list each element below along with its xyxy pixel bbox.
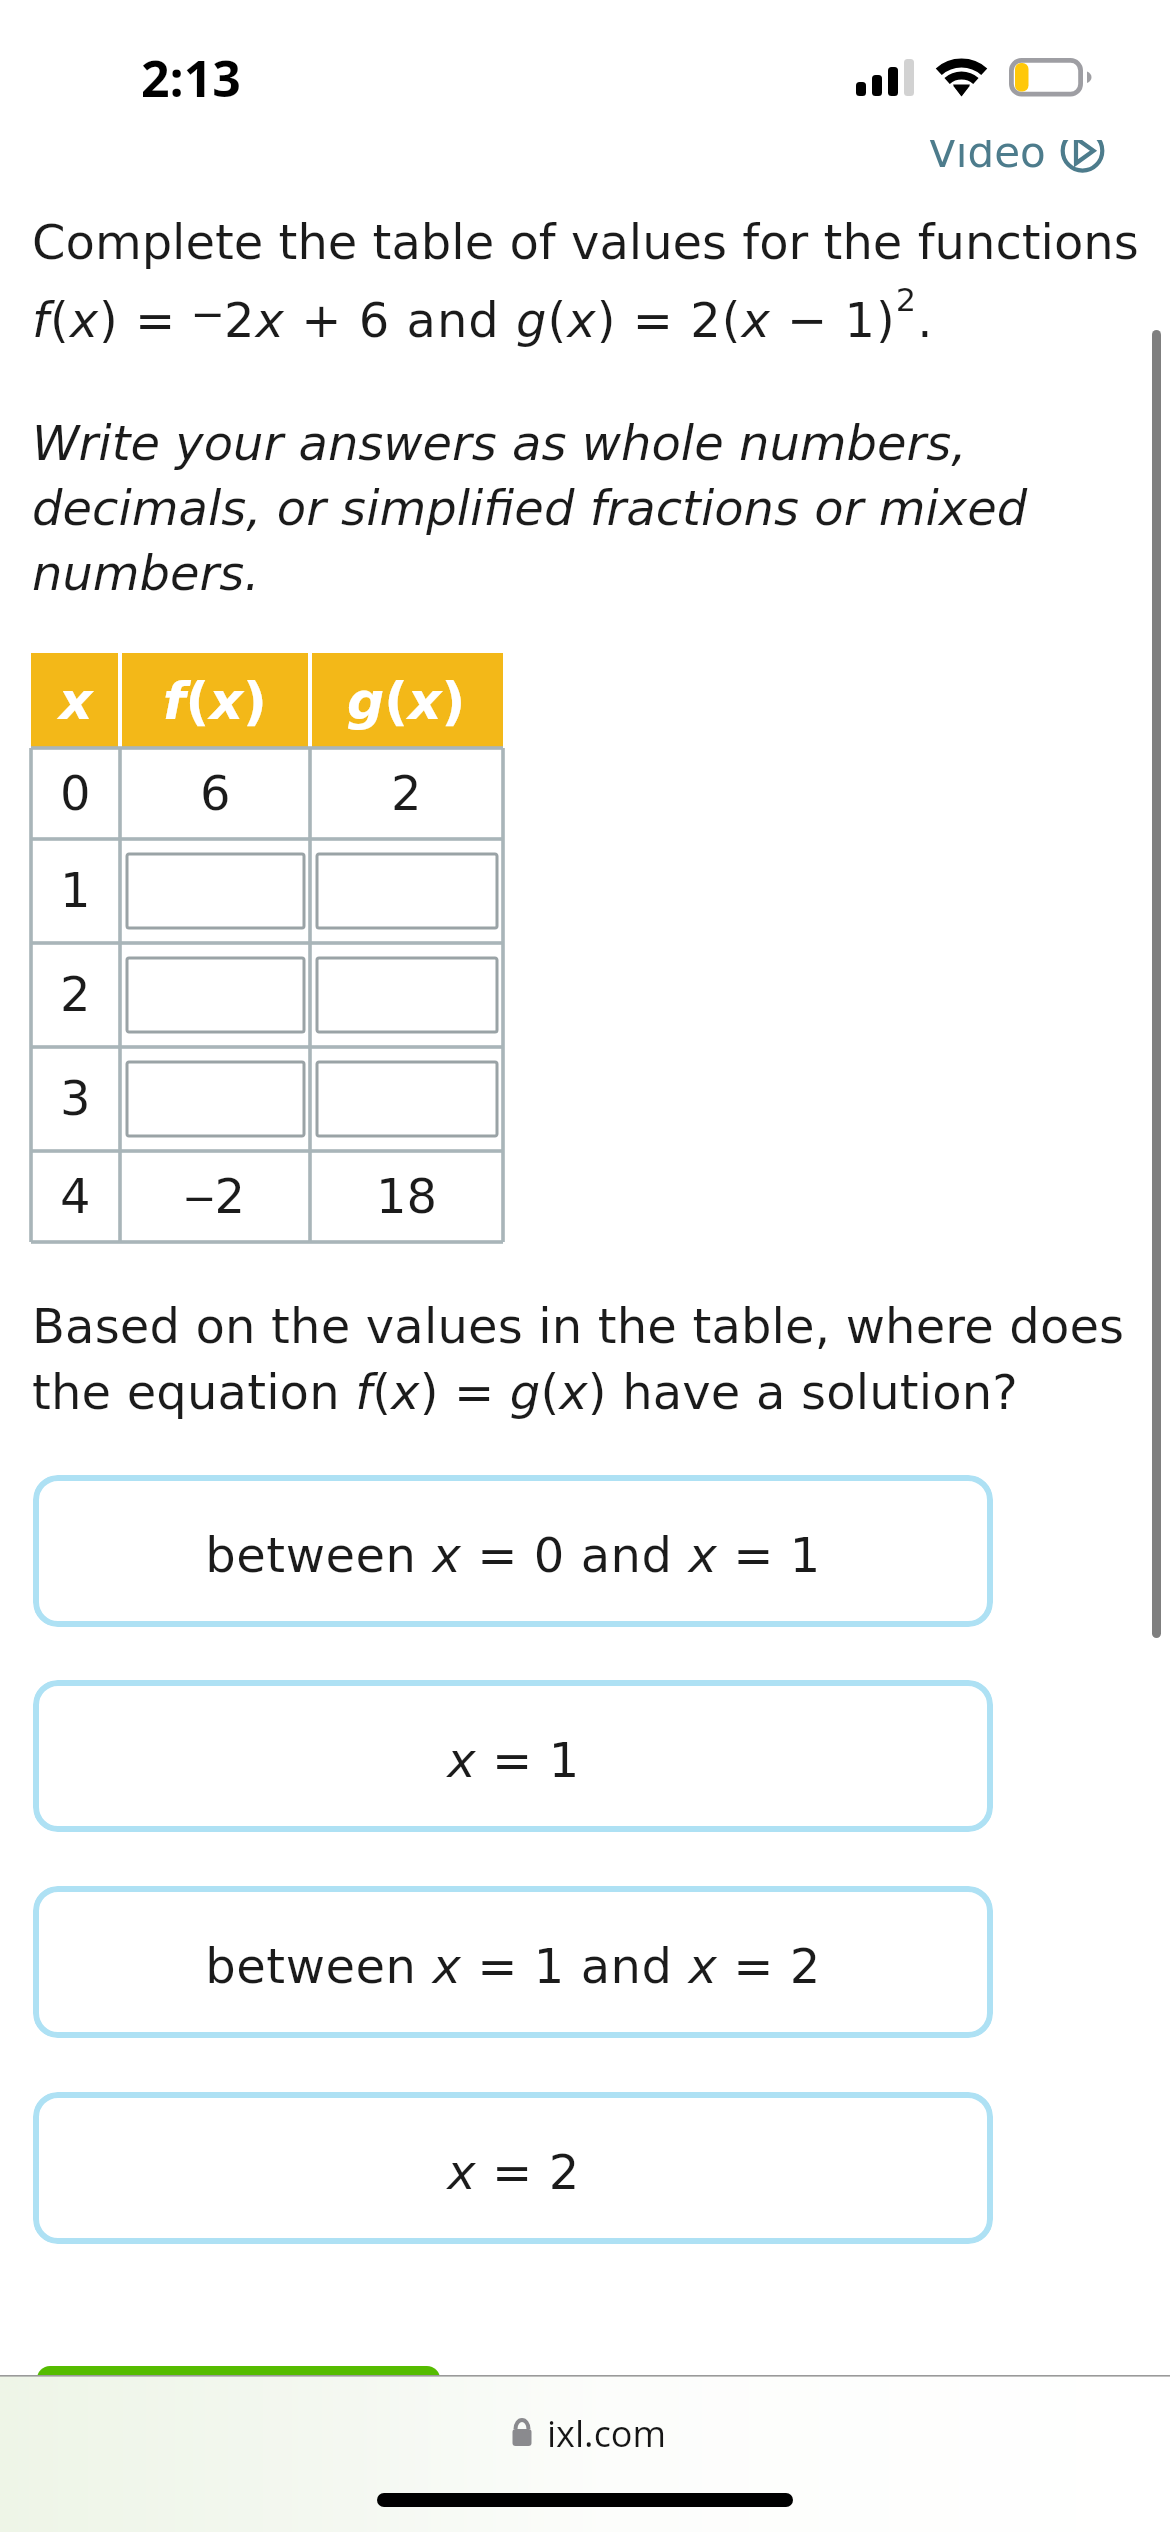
staticText: Complete the table of values for the fun… — [32, 214, 1139, 270]
staticText: x — [59, 671, 93, 732]
button[interactable]: Secure connection — [507, 2409, 667, 2458]
staticText: 4 — [60, 1168, 91, 1224]
staticText: Based on the values in the table, where … — [32, 1298, 1125, 1420]
button[interactable] — [37, 2366, 440, 2466]
staticText: 2:13 — [141, 44, 241, 112]
staticText: ‒2 — [184, 1168, 246, 1224]
staticText: 3 — [60, 1070, 91, 1126]
staticText: 6 — [200, 765, 231, 821]
staticText: between x = 0 and x = 1 — [205, 1527, 821, 1583]
button[interactable]: between x = 0 and x = 1 — [33, 1475, 993, 1627]
staticText: f(x) = ‒2x + 6 and g(x) = 2(x − 1)2. — [32, 281, 934, 349]
other: Secure connection — [507, 2419, 537, 2449]
staticText: x = 1 — [447, 1732, 580, 1788]
staticText: 18 — [376, 1168, 438, 1224]
staticText: 1 — [60, 862, 91, 918]
button[interactable]: x = 2 — [33, 2092, 993, 2244]
staticText: 2 — [391, 765, 422, 821]
staticText: Video — [928, 128, 1046, 177]
staticText: Write your answers as whole numbers, dec… — [32, 415, 1028, 601]
button[interactable]: between x = 1 and x = 2 — [33, 1886, 993, 2038]
staticText: x = 2 — [447, 2144, 580, 2200]
staticText: 0 — [60, 765, 91, 821]
button[interactable]: Play video — [1060, 129, 1105, 174]
staticText: ixl.com — [547, 2409, 667, 2458]
button[interactable]: x = 1 — [33, 1680, 993, 1832]
staticText: f(x) — [163, 671, 267, 732]
staticText: between x = 1 and x = 2 — [205, 1938, 821, 1994]
staticText: 2 — [60, 966, 91, 1022]
staticText: g(x) — [347, 671, 466, 732]
